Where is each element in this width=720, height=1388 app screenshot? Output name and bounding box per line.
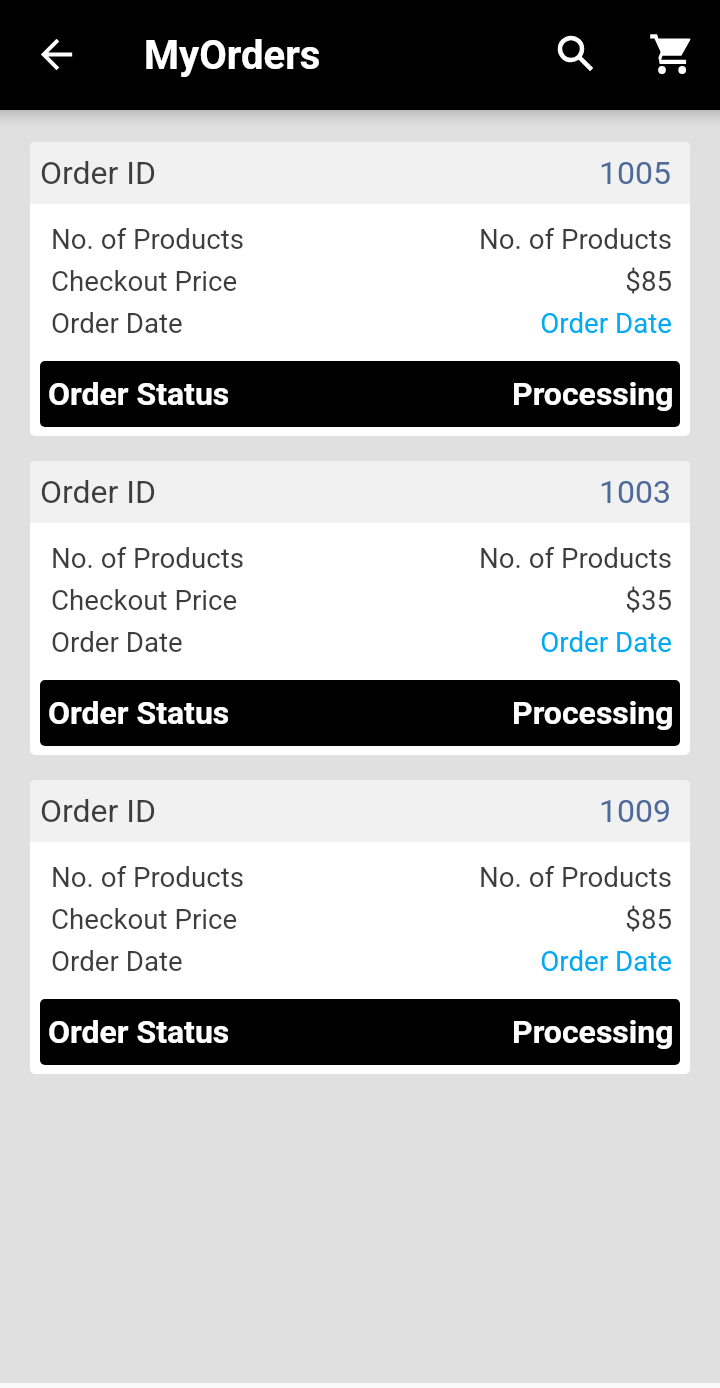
staticText: Order ID [40,154,157,192]
staticText: Processing [512,694,674,732]
staticText: Processing [512,1013,674,1051]
staticText: $85 [625,265,672,297]
staticText: Order Date [51,626,183,658]
staticText: Order Date [51,945,183,977]
staticText: 1005 [599,154,671,192]
staticText: 1003 [599,473,671,511]
staticText: Order ID [40,792,157,830]
staticText: Processing [512,375,674,413]
staticText: Order Date [540,307,672,339]
staticText: Order Date [540,626,672,658]
staticText: MyOrders [144,32,321,79]
staticText: No. of Products [478,223,672,255]
staticText: Checkout Price [51,584,238,616]
button[interactable]: Back [14,12,100,98]
staticText: $35 [625,584,672,616]
button[interactable]: Search [530,12,616,98]
button[interactable]: Order ID [30,780,690,1074]
staticText: No. of Products [51,223,245,255]
button[interactable]: Order ID [30,461,690,755]
button[interactable]: Order ID [30,142,690,436]
staticText: Checkout Price [51,265,238,297]
staticText: No. of Products [51,861,245,893]
staticText: Order Date [540,945,672,977]
staticText: No. of Products [478,861,672,893]
button[interactable]: Shopping cart [620,12,706,98]
staticText: $85 [625,903,672,935]
staticText: Order ID [40,473,157,511]
staticText: No. of Products [51,542,245,574]
staticText: Order Status [48,1013,230,1051]
staticText: No. of Products [478,542,672,574]
staticText: 1009 [599,792,671,830]
staticText: Checkout Price [51,903,238,935]
staticText: Order Status [48,375,230,413]
staticText: Order Date [51,307,183,339]
staticText: Order Status [48,694,230,732]
